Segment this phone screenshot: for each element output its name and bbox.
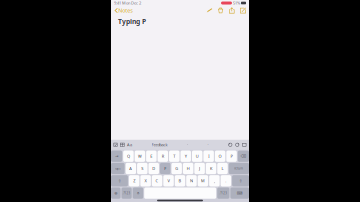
staticText: · (187, 142, 188, 147)
button[interactable]: .?123 (217, 187, 229, 199)
button[interactable]: New note (240, 6, 246, 15)
staticText: N (190, 178, 193, 183)
staticText: 51% (232, 0, 241, 6)
button[interactable]: return (229, 163, 249, 174)
staticText: return (234, 167, 243, 170)
staticText: ⇥ (115, 154, 118, 158)
staticText: G (175, 166, 178, 171)
staticText: F (164, 166, 166, 171)
button[interactable]: J (194, 163, 205, 174)
button[interactable]: ⇥ (111, 151, 122, 162)
staticText: B (178, 178, 181, 183)
staticText: O (219, 153, 222, 159)
staticText: ⌫ (240, 154, 246, 158)
button[interactable]: .?123 (121, 187, 132, 199)
staticText: ⇧ (239, 178, 242, 183)
button[interactable]: Share (229, 6, 235, 15)
button[interactable]: caps (111, 163, 125, 174)
button[interactable]: H (183, 163, 193, 174)
staticText: ⌨ (237, 191, 243, 195)
button[interactable]: A (126, 163, 136, 174)
staticText: 9:41 Mon Dec 2 (114, 0, 141, 6)
button[interactable]: G (171, 163, 182, 174)
staticText: ◓ (137, 192, 139, 195)
staticText: · (208, 142, 209, 147)
staticText: Z (133, 178, 135, 183)
button[interactable]: R (158, 151, 168, 162)
staticText: R (162, 153, 164, 159)
staticText: H (187, 166, 190, 171)
staticText: S (141, 166, 143, 171)
staticText: L (221, 166, 223, 171)
button[interactable]: Y (180, 151, 191, 162)
staticText: K (210, 166, 212, 171)
button[interactable]: . (221, 175, 231, 186)
staticText: J (199, 166, 200, 171)
button[interactable]: P (226, 151, 237, 162)
staticText: ⊕ (114, 191, 117, 195)
button[interactable]: L (217, 163, 228, 174)
staticText: Q (127, 153, 130, 159)
staticText: I (208, 153, 209, 159)
button[interactable]: Delete (218, 6, 224, 15)
staticText: C (156, 178, 159, 183)
button[interactable] (144, 187, 216, 199)
staticText: Notes (118, 7, 133, 14)
button[interactable]: C (152, 175, 162, 186)
button[interactable]: T (169, 151, 179, 162)
button[interactable]: ⌫ (238, 151, 249, 162)
staticText: V (167, 178, 169, 183)
button[interactable]: O (215, 151, 225, 162)
staticText: U (196, 153, 199, 159)
button[interactable]: U (192, 151, 202, 162)
staticText: Y (185, 153, 187, 159)
button[interactable]: N (186, 175, 197, 186)
button[interactable]: D (148, 163, 159, 174)
button[interactable]: X (140, 175, 151, 186)
button[interactable]: ⌨ (230, 187, 249, 199)
staticText: T (173, 153, 175, 159)
button[interactable]: Markup (206, 6, 212, 15)
button[interactable]: W (135, 151, 145, 162)
button[interactable]: ⇧ (232, 175, 249, 186)
staticText: , (214, 178, 215, 183)
staticText: X (145, 178, 147, 183)
staticText: Aa (127, 142, 132, 147)
button[interactable]: Hide keyboard (242, 143, 246, 147)
staticText: .?123 (123, 191, 131, 195)
button[interactable]: ⊕ (111, 187, 120, 199)
button[interactable]: Z (129, 175, 139, 186)
staticText: A (129, 166, 132, 171)
button[interactable]: I (203, 151, 214, 162)
button[interactable]: Redo (235, 143, 239, 147)
staticText: . (225, 178, 226, 183)
staticText: .?123 (219, 191, 227, 195)
staticText: D (152, 166, 155, 171)
staticText: Feedback (152, 142, 168, 147)
button[interactable]: Notes (114, 6, 134, 15)
staticText: W (138, 153, 142, 159)
button[interactable]: M (198, 175, 208, 186)
button[interactable]: ⇧ (111, 175, 128, 186)
button[interactable]: Undo (228, 143, 232, 147)
staticText: P (231, 153, 233, 159)
staticText: M (201, 178, 205, 183)
staticText: E (150, 153, 152, 159)
button[interactable]: B (175, 175, 185, 186)
button[interactable]: Format (113, 140, 132, 150)
button[interactable]: ◓ (133, 187, 143, 199)
button[interactable]: Q (123, 151, 134, 162)
button[interactable]: K (206, 163, 216, 174)
staticText: Typing P (118, 17, 146, 26)
button[interactable]: , (209, 175, 220, 186)
staticText: caps (115, 167, 120, 170)
button[interactable]: F (160, 163, 170, 174)
button[interactable]: E (146, 151, 157, 162)
button[interactable]: V (163, 175, 174, 186)
button[interactable]: S (137, 163, 148, 174)
staticText: ⇧ (118, 178, 121, 183)
